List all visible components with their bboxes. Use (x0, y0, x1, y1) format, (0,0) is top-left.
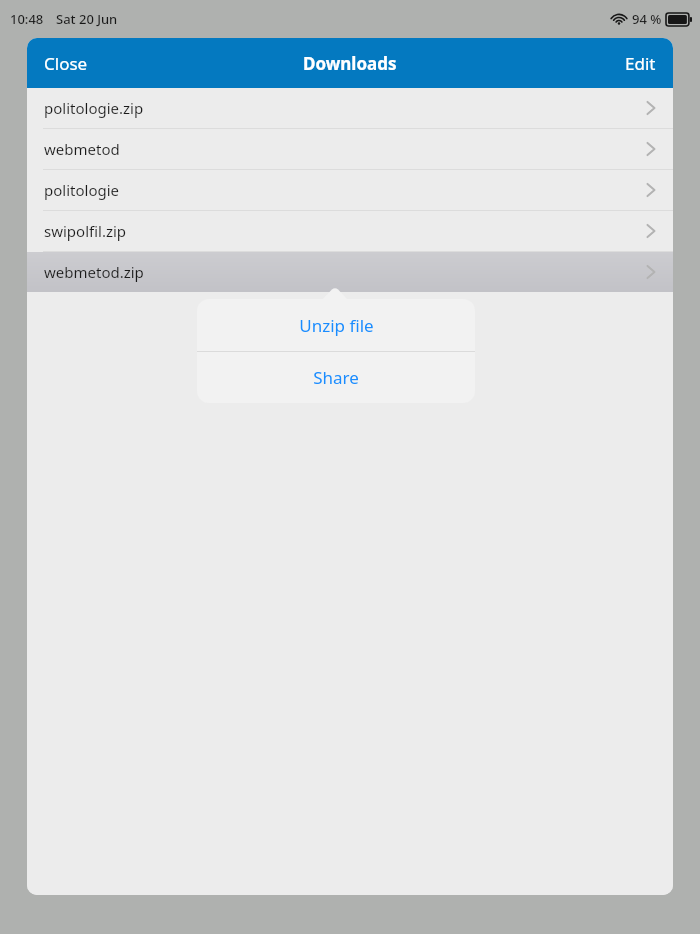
staticText: Downloads (303, 52, 397, 75)
button[interactable]: Close (27, 38, 105, 88)
button[interactable]: swipolfil.zip (27, 211, 673, 251)
button[interactable]: politologie.zip (27, 88, 673, 128)
staticText: Edit (625, 52, 656, 75)
button[interactable]: Unzip file (197, 299, 475, 351)
staticText: swipolfil.zip (44, 221, 127, 241)
staticText: politologie (44, 180, 120, 200)
button[interactable]: webmetod.zip (27, 252, 673, 292)
staticText: Close (44, 52, 88, 75)
button[interactable]: Share (197, 352, 475, 403)
staticText: politologie.zip (44, 98, 144, 118)
button[interactable]: politologie (27, 170, 673, 210)
staticText: 10:48 (10, 10, 44, 28)
staticText: Share (313, 366, 359, 389)
staticText: webmetod (44, 139, 120, 159)
button[interactable]: Edit (608, 38, 673, 88)
button[interactable]: webmetod (27, 129, 673, 169)
staticText: Sat 20 Jun (56, 10, 118, 28)
staticText: webmetod.zip (44, 262, 144, 282)
staticText: 94 % (632, 10, 662, 28)
staticText: Unzip file (299, 314, 374, 337)
